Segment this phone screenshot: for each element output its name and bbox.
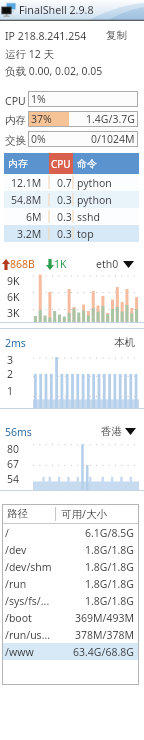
staticText: 0/1024M xyxy=(91,132,135,146)
staticText: 1.4G/3.7G xyxy=(86,112,135,126)
staticText: /dev/shm xyxy=(5,560,52,574)
staticText: 2ms xyxy=(5,336,26,350)
staticText: / xyxy=(5,526,9,540)
button[interactable]: /run xyxy=(2,575,139,592)
staticText: 本机 xyxy=(114,336,135,349)
staticText: python xyxy=(77,193,112,207)
staticText: 1.8G/1.8G xyxy=(85,577,134,591)
staticText: 54.8M xyxy=(11,193,42,207)
button[interactable]: /www xyxy=(2,643,139,660)
button[interactable]: 12.1M xyxy=(4,174,139,191)
staticText: 369M/493M xyxy=(75,611,134,625)
other: Upload xyxy=(2,259,10,270)
button[interactable]: CPU xyxy=(0,91,144,111)
staticText: 3K xyxy=(7,306,20,320)
staticText: /dev xyxy=(5,543,27,557)
staticText: CPU xyxy=(51,157,71,171)
staticText: 路径 xyxy=(7,507,28,520)
button[interactable]: 内存 xyxy=(0,111,144,131)
staticText: 6.1G/8.5G xyxy=(85,526,134,540)
staticText: 内存 xyxy=(5,114,26,127)
staticText: eth0 xyxy=(96,257,119,271)
staticText: 0% xyxy=(31,132,46,146)
staticText: 3 xyxy=(7,353,14,367)
staticText: 3.2M xyxy=(17,227,42,241)
staticText: 54 xyxy=(7,472,20,486)
staticText: 0.3 xyxy=(57,227,72,241)
staticText: 6K xyxy=(7,290,20,304)
button[interactable]: 交换 xyxy=(0,131,144,151)
button[interactable]: 复制 xyxy=(106,29,127,42)
staticText: 37% xyxy=(31,112,52,126)
button[interactable]: /boot xyxy=(2,609,139,626)
staticText: 命令 xyxy=(77,157,97,170)
staticText: 63.4G/68.8G xyxy=(73,645,134,659)
staticText: 交换 xyxy=(5,134,26,147)
staticText: sshd xyxy=(77,210,101,224)
staticText: 868B xyxy=(10,257,35,271)
staticText: 6M xyxy=(26,210,42,224)
button[interactable]: /sys/fs/... xyxy=(2,592,139,609)
button[interactable]: 本机 xyxy=(114,336,135,349)
staticText: CPU xyxy=(5,94,26,108)
staticText: IP 218.8.241.254 xyxy=(5,29,87,43)
staticText: 1K xyxy=(54,257,67,271)
staticText: 1 xyxy=(7,384,14,398)
button[interactable]: eth0 xyxy=(96,257,134,271)
staticText: 香港 xyxy=(101,425,122,438)
staticText: 9K xyxy=(7,274,20,288)
staticText: 内存 xyxy=(8,157,28,170)
button[interactable]: / xyxy=(2,524,139,541)
staticText: 1.8G/1.8G xyxy=(85,543,134,557)
staticText: 1.8G/1.8G xyxy=(85,594,134,608)
staticText: 0.7 xyxy=(57,176,72,190)
button[interactable]: 54.8M xyxy=(4,191,139,208)
staticText: top xyxy=(77,227,94,241)
staticText: /boot xyxy=(5,611,32,625)
button[interactable]: 6M xyxy=(4,208,139,225)
staticText: 可用/大小 xyxy=(61,507,107,521)
staticText: 0.3 xyxy=(57,210,72,224)
button[interactable]: 香港 xyxy=(101,425,136,438)
staticText: 12.1M xyxy=(11,176,42,190)
button[interactable]: /dev/shm xyxy=(2,558,139,575)
staticText: 67 xyxy=(7,457,20,471)
staticText: 2 xyxy=(7,367,14,381)
staticText: 运行 12 天 xyxy=(5,47,54,61)
other: Download xyxy=(46,259,54,270)
staticText: 0.3 xyxy=(57,193,72,207)
staticText: 复制 xyxy=(106,29,127,42)
staticText: FinalShell 2.9.8 xyxy=(19,3,94,18)
staticText: python xyxy=(77,176,112,190)
button[interactable]: /run/us... xyxy=(2,626,139,643)
staticText: 1.8G/1.8G xyxy=(85,560,134,574)
staticText: /run xyxy=(5,577,27,591)
staticText: /run/us... xyxy=(5,628,51,642)
staticText: 80 xyxy=(7,442,20,456)
staticText: 1% xyxy=(31,92,46,106)
staticText: /www xyxy=(5,645,34,659)
staticText: 56ms xyxy=(5,425,32,439)
button[interactable]: 3.2M xyxy=(4,225,139,242)
button[interactable]: /dev xyxy=(2,541,139,558)
staticText: 378M/378M xyxy=(75,628,134,642)
staticText: 负载 0.00, 0.02, 0.05 xyxy=(5,64,103,78)
staticText: /sys/fs/... xyxy=(5,594,50,608)
